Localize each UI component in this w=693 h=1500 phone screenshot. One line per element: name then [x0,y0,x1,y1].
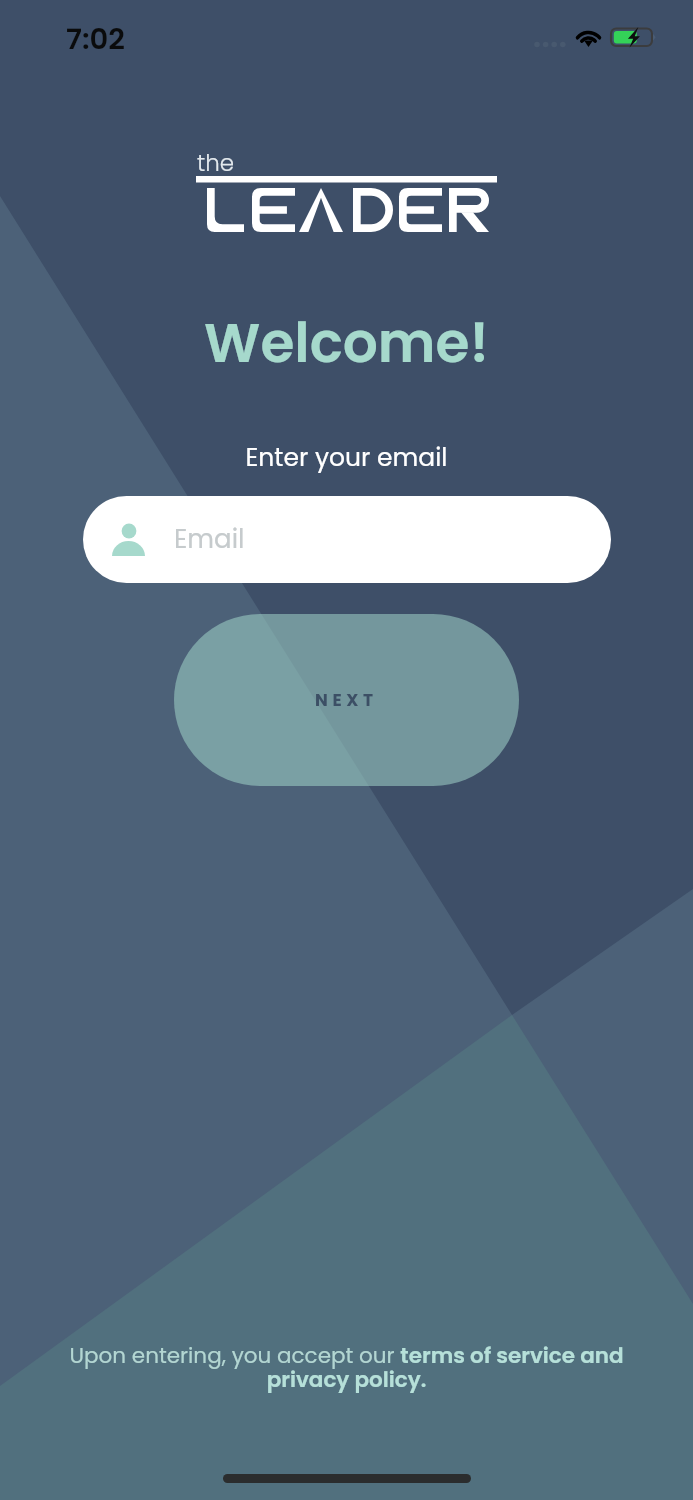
staticText: NEXT [315,688,378,712]
staticText: the [197,147,235,179]
staticText: Enter your email [0,440,693,475]
staticText: Email [174,521,245,557]
button[interactable]: Email input field [83,496,611,583]
staticText: Welcome! [0,304,693,381]
button[interactable]: NEXT [174,614,519,786]
button[interactable]: Upon entering, you accept our terms of s… [0,1336,693,1398]
staticText: 7:02 [66,19,125,60]
staticText: Upon entering, you accept our terms of s… [30,1340,663,1394]
